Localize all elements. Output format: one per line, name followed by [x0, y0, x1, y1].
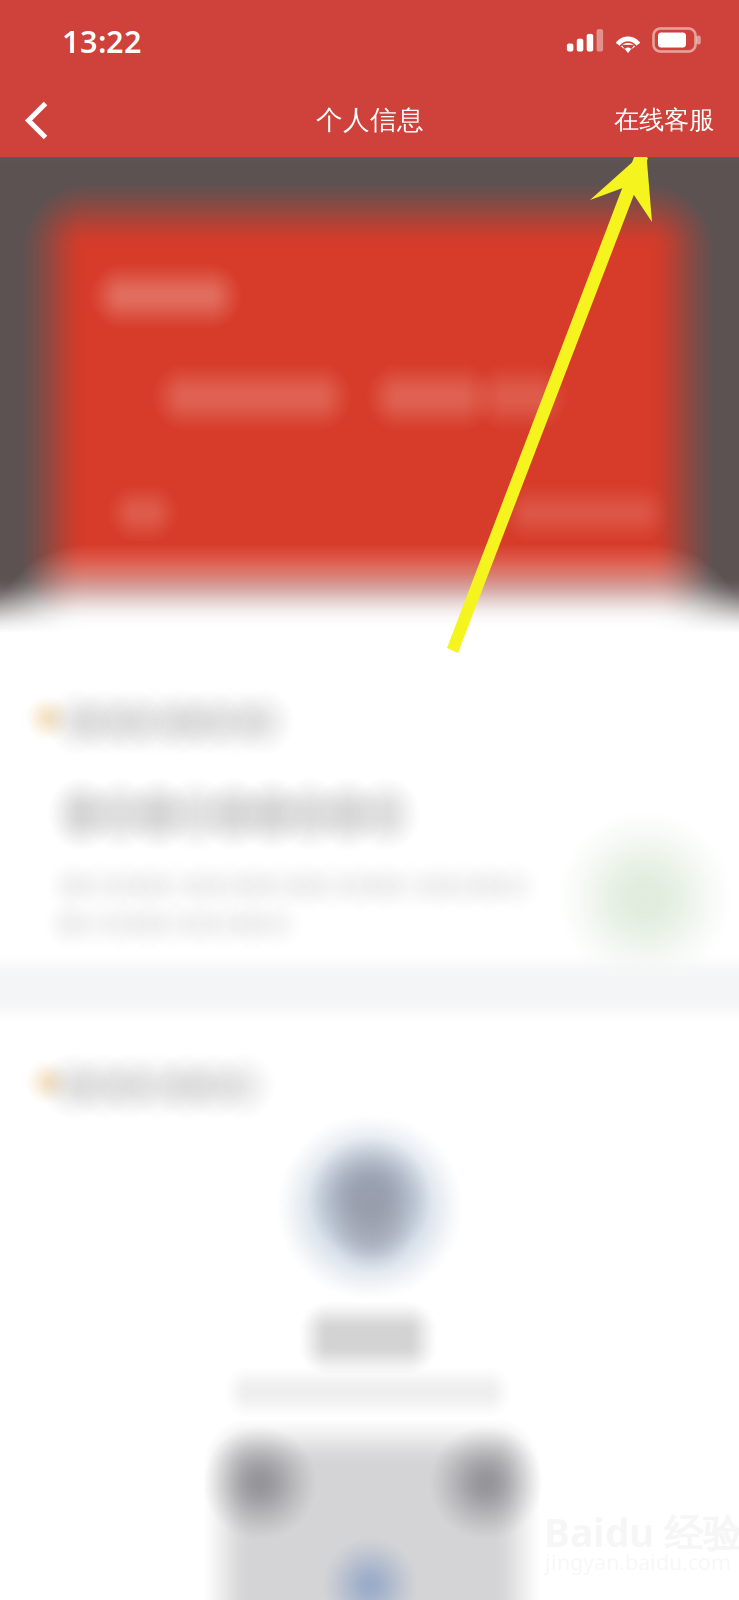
staticText: 在线客服 — [614, 104, 714, 135]
button[interactable]: 返回 — [0, 84, 84, 157]
button[interactable]: 在线客服 — [589, 83, 739, 156]
staticText: 13:22 — [62, 21, 142, 61]
staticText: 个人信息 — [316, 104, 424, 136]
staticText: Baidu 经验 — [544, 1506, 739, 1558]
